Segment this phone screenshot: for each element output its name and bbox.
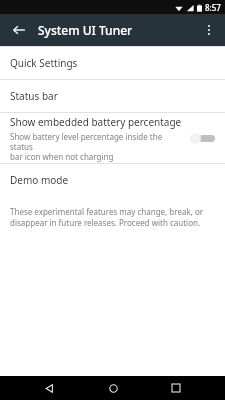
button[interactable]: Status bar	[0, 80, 225, 112]
staticText: Show battery level percentage inside the…	[10, 131, 183, 162]
button[interactable]: Back	[34, 376, 64, 400]
staticText: Demo mode	[10, 173, 69, 187]
staticText: Show embedded battery percentage	[10, 115, 182, 129]
button[interactable]: Demo mode	[0, 164, 225, 196]
staticText: These experimental features may change, …	[10, 206, 204, 228]
button[interactable]: Show embedded battery percentage	[0, 113, 225, 163]
button[interactable]: Back	[6, 17, 32, 43]
button[interactable]: Recent apps	[161, 376, 191, 400]
staticText: Quick Settings	[10, 56, 78, 70]
staticText: 8:57	[205, 2, 221, 13]
button[interactable]: Quick Settings	[0, 47, 225, 79]
button[interactable]: Home	[98, 376, 128, 400]
staticText: Status bar	[10, 89, 58, 103]
button[interactable]: Toggle embedded battery percentage	[189, 128, 217, 148]
staticText: System UI Tuner	[38, 22, 133, 38]
button[interactable]: More options	[196, 17, 222, 43]
